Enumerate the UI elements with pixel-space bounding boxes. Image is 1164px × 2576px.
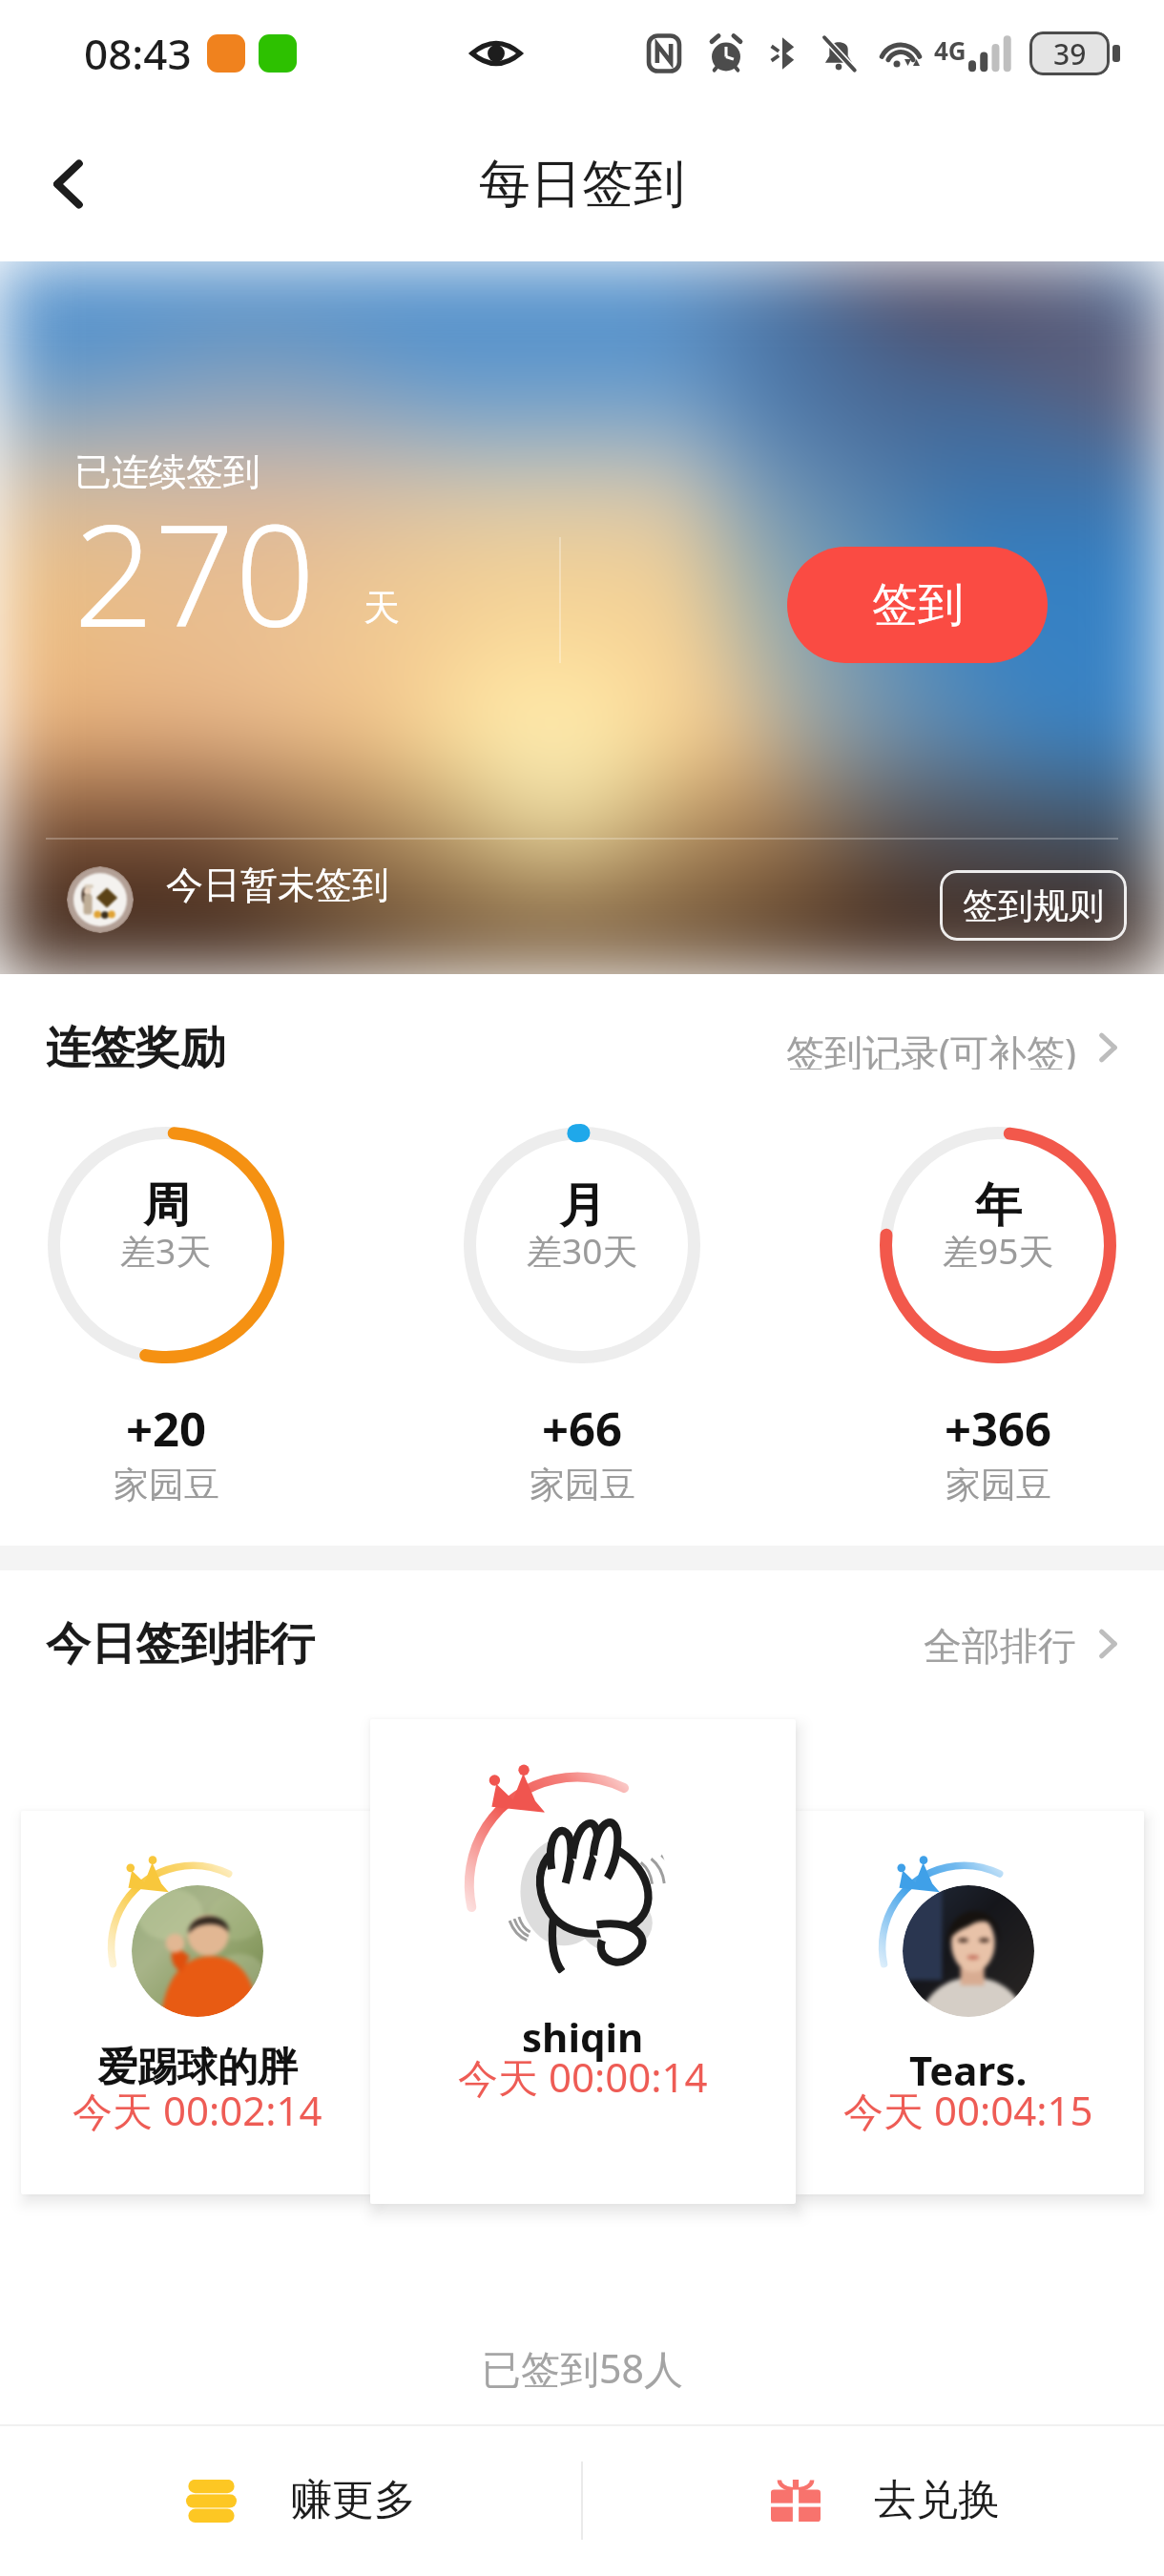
staticText: 月 — [559, 1176, 606, 1236]
staticText: 签到 — [872, 576, 964, 634]
staticText: 已签到58人 — [482, 2341, 683, 2395]
staticText: 家园豆 — [946, 1463, 1051, 1506]
staticText: 签到记录(可补签) — [786, 1026, 1076, 1070]
button[interactable]: 签到规则 — [940, 870, 1127, 941]
staticText: 270 — [73, 476, 316, 669]
staticText: 08:43 — [84, 25, 192, 82]
button[interactable]: Back — [23, 138, 114, 230]
staticText: 家园豆 — [114, 1463, 219, 1506]
staticText: 差3天 — [120, 1226, 212, 1275]
staticText: 年 — [975, 1176, 1022, 1236]
staticText: +66 — [542, 1397, 623, 1461]
staticText: 今天 00:04:15 — [843, 2083, 1093, 2137]
staticText: 差95天 — [943, 1226, 1054, 1275]
staticText: 今日签到排行 — [46, 1616, 315, 1672]
staticText: 今天 00:02:14 — [73, 2083, 322, 2137]
button[interactable]: 周 — [48, 1127, 284, 1506]
staticText: 周 — [143, 1176, 190, 1236]
button[interactable]: 签到 — [787, 547, 1048, 663]
staticText: 爱踢球的胖 — [97, 2043, 298, 2093]
staticText: 差30天 — [527, 1226, 638, 1275]
button[interactable]: shiqin — [370, 1719, 796, 2204]
staticText: 全部排行 — [924, 1622, 1076, 1666]
button[interactable]: 爱踢球的胖 — [21, 1811, 373, 2194]
button[interactable]: 赚更多 — [21, 2424, 581, 2576]
button[interactable]: 去兑换 — [606, 2424, 1164, 2576]
button[interactable]: 全部排行 — [924, 1612, 1130, 1675]
staticText: +20 — [126, 1397, 207, 1461]
staticText: 连签奖励 — [46, 1020, 225, 1076]
staticText: +366 — [945, 1397, 1052, 1461]
staticText: 签到规则 — [963, 883, 1104, 928]
staticText: 去兑换 — [874, 2474, 1000, 2526]
staticText: 每日签到 — [479, 152, 685, 217]
staticText: Tears. — [909, 2043, 1028, 2097]
staticText: 赚更多 — [290, 2474, 416, 2526]
button[interactable]: Tears. — [792, 1811, 1144, 2194]
button[interactable]: 月 — [464, 1127, 700, 1506]
staticText: 家园豆 — [530, 1463, 635, 1506]
staticText: 今日暂未签到 — [166, 862, 389, 908]
button[interactable]: 签到记录(可补签) — [786, 1016, 1130, 1079]
button[interactable]: 年 — [880, 1127, 1116, 1506]
staticText: 天 — [364, 585, 400, 631]
staticText: 已连续签到 — [74, 448, 260, 495]
staticText: shiqin — [522, 2009, 644, 2064]
staticText: 4G — [934, 33, 967, 67]
staticText: 39 — [1053, 34, 1087, 73]
staticText: 今天 00:00:14 — [458, 2049, 708, 2104]
